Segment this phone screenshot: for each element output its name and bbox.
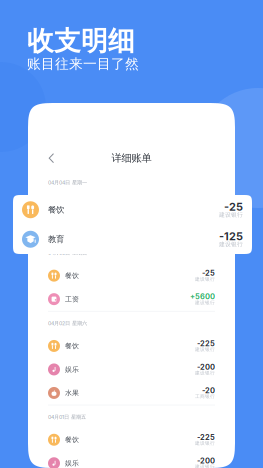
staticText: 04月04日 星期一 bbox=[48, 179, 87, 186]
button[interactable]: 餐饮 bbox=[28, 428, 235, 451]
button[interactable]: 娱乐 bbox=[28, 451, 235, 468]
staticText: 04月01日 星期五 bbox=[48, 414, 86, 420]
button[interactable]: 教育 bbox=[13, 224, 252, 254]
button[interactable]: 工资 bbox=[28, 287, 235, 311]
button[interactable]: 餐饮 bbox=[28, 264, 235, 287]
staticText: -25 bbox=[224, 200, 243, 213]
staticText: 建设银行 bbox=[195, 440, 215, 446]
staticText: 餐饮 bbox=[65, 342, 79, 350]
staticText: -225 bbox=[197, 339, 215, 348]
button[interactable]: 返回 bbox=[42, 146, 62, 170]
staticText: 收支明细 bbox=[27, 24, 135, 58]
staticText: 工资 bbox=[65, 295, 79, 303]
staticText: 娱乐 bbox=[65, 365, 79, 374]
staticText: 建设银行 bbox=[195, 370, 215, 376]
button[interactable]: 娱乐 bbox=[28, 358, 235, 381]
staticText: 04月02日 星期六 bbox=[48, 320, 87, 326]
staticText: 04月03日 星期日 bbox=[48, 250, 87, 256]
staticText: 餐饮 bbox=[65, 435, 79, 444]
staticText: 娱乐 bbox=[65, 459, 79, 468]
button[interactable]: 教育 bbox=[28, 217, 235, 241]
staticText: 建设银行 bbox=[195, 346, 215, 352]
staticText: 建设银行 bbox=[195, 300, 215, 306]
staticText: -200 bbox=[197, 362, 215, 371]
staticText: 水果 bbox=[65, 389, 79, 397]
staticText: 工商银行 bbox=[195, 393, 215, 399]
staticText: 餐饮 bbox=[48, 204, 64, 215]
staticText: -125 bbox=[219, 230, 243, 243]
staticText: -25 bbox=[202, 269, 215, 278]
button[interactable]: 餐饮 bbox=[28, 194, 235, 217]
staticText: 建设银行 bbox=[219, 241, 243, 248]
staticText: -200 bbox=[197, 456, 215, 465]
staticText: 餐饮 bbox=[65, 271, 79, 280]
staticText: 建设银行 bbox=[195, 464, 215, 468]
staticText: 账目往来一目了然 bbox=[27, 55, 139, 73]
staticText: 建设银行 bbox=[219, 211, 243, 218]
staticText: -20 bbox=[202, 386, 215, 395]
button[interactable]: 餐饮 bbox=[28, 334, 235, 358]
staticText: 建设银行 bbox=[195, 276, 215, 282]
button[interactable]: 餐饮 bbox=[13, 195, 252, 224]
staticText: -225 bbox=[197, 433, 215, 442]
staticText: 教育 bbox=[48, 234, 64, 245]
staticText: +5600 bbox=[190, 292, 215, 301]
button[interactable]: 水果 bbox=[28, 381, 235, 405]
staticText: 详细账单 bbox=[111, 152, 151, 165]
